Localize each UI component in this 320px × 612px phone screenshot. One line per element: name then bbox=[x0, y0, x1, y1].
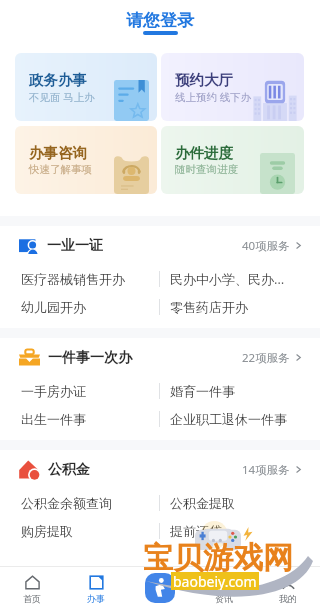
staticText: 办事 bbox=[87, 593, 105, 604]
staticText: 线上预约 线下办 bbox=[175, 90, 252, 104]
button[interactable]: 公积金提取 bbox=[160, 489, 320, 517]
staticText: 政务办事 bbox=[29, 71, 87, 89]
button[interactable]: 婚育一件事 bbox=[160, 377, 320, 405]
staticText: 公积金余额查询 bbox=[21, 495, 112, 511]
button[interactable]: 零售药店开办 bbox=[160, 293, 320, 321]
button[interactable]: 预约大厅 bbox=[161, 53, 304, 121]
button[interactable]: 办事咨询 bbox=[15, 126, 157, 194]
button[interactable]: 办事 bbox=[64, 566, 128, 612]
staticText: 一件事一次办 bbox=[48, 349, 132, 367]
staticText: 一业一证 bbox=[47, 237, 103, 255]
staticText: 随时查询进度 bbox=[175, 163, 238, 176]
staticText: 民办中小学、民办… bbox=[170, 270, 285, 288]
staticText: 不见面 马上办 bbox=[29, 90, 95, 104]
staticText: 40项服务 bbox=[242, 238, 290, 254]
staticText: 购房提取 bbox=[21, 523, 73, 539]
staticText: baobeiy.com bbox=[173, 572, 257, 590]
button[interactable]: 医疗器械销售开办 bbox=[0, 265, 159, 293]
staticText: 医疗器械销售开办 bbox=[21, 271, 125, 287]
staticText: 宝贝游戏网 bbox=[143, 539, 293, 577]
staticText: 资讯 bbox=[215, 593, 233, 604]
button[interactable]: 企业职工退休一件事 bbox=[160, 405, 320, 433]
button[interactable]: 首页 bbox=[0, 566, 64, 612]
button[interactable]: 一业一证 bbox=[0, 226, 320, 265]
button[interactable]: 购房提取 bbox=[0, 517, 159, 545]
staticText: 快速了解事项 bbox=[29, 163, 92, 176]
button[interactable]: 我的 bbox=[256, 566, 320, 612]
staticText: 公积金提取 bbox=[170, 495, 235, 511]
staticText: 出生一件事 bbox=[21, 411, 86, 427]
button[interactable]: 民办中小学、民办… bbox=[160, 265, 320, 293]
staticText: 首页 bbox=[23, 593, 41, 604]
staticText: 一手房办证 bbox=[21, 383, 86, 399]
staticText: 幼儿园开办 bbox=[21, 299, 86, 315]
staticText: 零售药店开办 bbox=[170, 299, 248, 315]
button[interactable]: 出生一件事 bbox=[0, 405, 159, 433]
staticText: 22项服务 bbox=[242, 350, 290, 366]
button[interactable]: 政务办事 bbox=[15, 53, 157, 121]
staticText: 14项服务 bbox=[242, 462, 290, 478]
staticText: 办事咨询 bbox=[29, 144, 87, 162]
staticText: 婚育一件事 bbox=[170, 383, 235, 399]
staticText: 我的 bbox=[279, 593, 297, 604]
button[interactable]: 跑一次 quick service bbox=[145, 573, 175, 603]
button[interactable]: 提前还贷 bbox=[160, 517, 320, 545]
button[interactable]: 一手房办证 bbox=[0, 377, 159, 405]
staticText: 请您登录 bbox=[126, 10, 194, 31]
staticText: 办件进度 bbox=[175, 144, 233, 162]
staticText: 公积金 bbox=[48, 461, 90, 479]
button[interactable]: 公积金余额查询 bbox=[0, 489, 159, 517]
button[interactable]: 资讯 bbox=[192, 566, 256, 612]
button[interactable]: 一件事一次办 bbox=[0, 338, 320, 377]
staticText: 预约大厅 bbox=[175, 71, 233, 89]
staticText: 企业职工退休一件事 bbox=[170, 411, 287, 427]
button[interactable]: 幼儿园开办 bbox=[0, 293, 159, 321]
button[interactable]: 公积金 bbox=[0, 450, 320, 489]
staticText: 提前还贷 bbox=[170, 523, 222, 539]
button[interactable]: 办件进度 bbox=[161, 126, 304, 194]
